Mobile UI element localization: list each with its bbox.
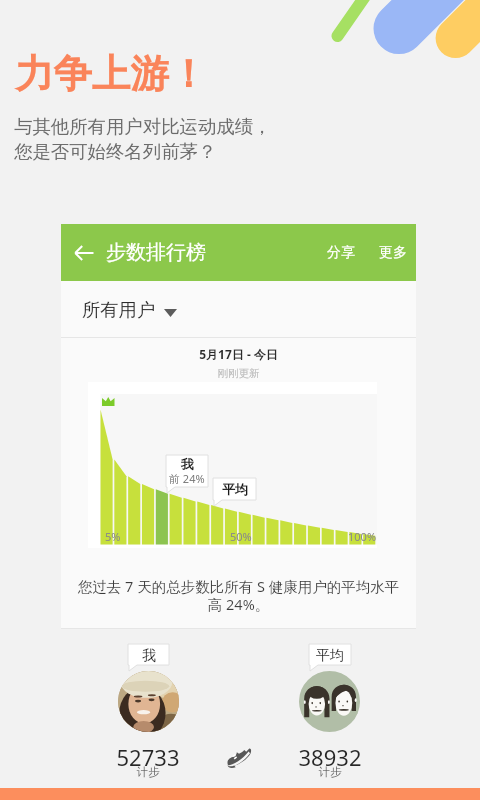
- staticText: 与其他所有用户对比运动成绩， 您是否可始终名列前茅？: [14, 115, 272, 163]
- button[interactable]: 平均: [309, 644, 351, 671]
- staticText: 我: [181, 456, 194, 472]
- staticText: 计步: [270, 765, 390, 779]
- staticText: 平均: [316, 647, 344, 665]
- staticText: 我: [142, 647, 156, 665]
- staticText: 平均: [222, 481, 248, 497]
- button[interactable]: Back: [66, 235, 102, 271]
- button[interactable]: 更多: [371, 236, 415, 269]
- button[interactable]: 分享: [319, 236, 363, 269]
- staticText: 分享: [327, 244, 355, 262]
- staticText: 步数排行榜: [106, 240, 206, 265]
- staticText: 更多: [379, 244, 407, 262]
- button[interactable]: 我: [128, 644, 169, 671]
- staticText: 您过去 7 天的总步数比所有 S 健康用户的平均水平 高 24%。: [69, 576, 408, 615]
- staticText: 38932: [270, 742, 390, 772]
- staticText: 所有用户: [82, 298, 156, 321]
- staticText: 52733: [88, 742, 208, 772]
- staticText: 前 24%: [169, 471, 205, 486]
- staticText: 计步: [88, 765, 208, 779]
- staticText: 刚刚更新: [61, 367, 416, 380]
- staticText: 5%: [105, 529, 121, 544]
- staticText: 100%: [348, 529, 377, 544]
- staticText: 力争上游！: [15, 50, 208, 99]
- staticText: 5月17日 - 今日: [61, 346, 416, 362]
- other: Steps: [227, 747, 251, 768]
- button[interactable]: 所有用户: [61, 281, 416, 337]
- staticText: 50%: [230, 529, 252, 544]
